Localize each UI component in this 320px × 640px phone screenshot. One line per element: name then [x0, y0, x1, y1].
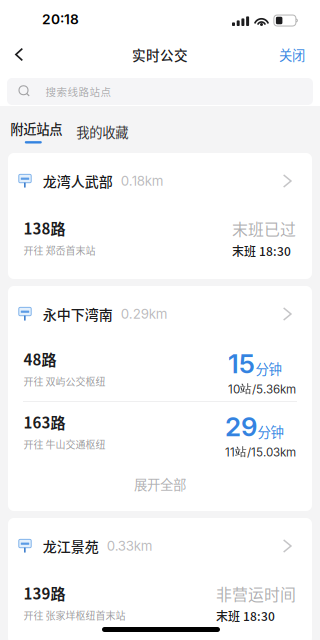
- staticText: 29: [225, 411, 257, 443]
- button[interactable]: 48路: [8, 342, 312, 401]
- staticText: 永中下湾南: [43, 304, 113, 324]
- button[interactable]: 展开全部: [8, 457, 312, 511]
- button[interactable]: 关闭: [261, 38, 320, 71]
- staticText: 开往 郑岙首末站: [23, 243, 95, 257]
- staticText: 分钟: [255, 359, 281, 378]
- button[interactable]: Back: [0, 41, 41, 68]
- button[interactable]: 龙江景苑: [8, 518, 312, 574]
- staticText: 139路: [23, 582, 65, 604]
- staticText: 我的收藏: [76, 122, 128, 141]
- button[interactable]: 139路: [8, 574, 312, 640]
- staticText: 48路: [23, 348, 56, 370]
- staticText: 开往 张家垟枢纽首末站: [23, 608, 125, 622]
- staticText: 末班已过: [232, 217, 296, 240]
- staticText: 关闭: [279, 45, 305, 64]
- staticText: 龙江景苑: [43, 536, 99, 556]
- staticText: 搜索线路站点: [45, 84, 111, 99]
- staticText: 20:18: [42, 11, 79, 28]
- button[interactable]: 搜索线路站点: [0, 78, 320, 105]
- staticText: 末班 18:30: [232, 242, 291, 259]
- staticText: 实时公交: [132, 45, 188, 64]
- staticText: 附近站点: [10, 119, 62, 138]
- staticText: 展开全部: [134, 474, 186, 494]
- staticText: 0.29km: [121, 306, 168, 322]
- staticText: 龙湾人武部: [43, 171, 113, 191]
- staticText: 开往 双屿公交枢纽: [23, 374, 105, 388]
- staticText: 末班 18:30: [216, 607, 275, 624]
- staticText: 10站/5.36km: [228, 382, 296, 396]
- staticText: 开往 牛山交通枢纽: [23, 437, 105, 451]
- staticText: 0.33km: [107, 538, 153, 554]
- button[interactable]: 永中下湾南: [8, 286, 312, 342]
- staticText: 非营运时间: [216, 582, 296, 605]
- button[interactable]: 163路: [8, 402, 312, 457]
- button[interactable]: 附近站点: [0, 122, 76, 143]
- button[interactable]: 138路: [8, 209, 312, 279]
- staticText: 163路: [23, 411, 65, 433]
- staticText: 138路: [23, 217, 65, 239]
- button[interactable]: 龙湾人武部: [8, 153, 312, 209]
- button[interactable]: 我的收藏: [76, 122, 128, 143]
- staticText: 分钟: [257, 422, 283, 441]
- staticText: 0.18km: [121, 173, 164, 189]
- staticText: 15: [228, 348, 255, 380]
- staticText: 11站/15.03km: [225, 445, 296, 459]
